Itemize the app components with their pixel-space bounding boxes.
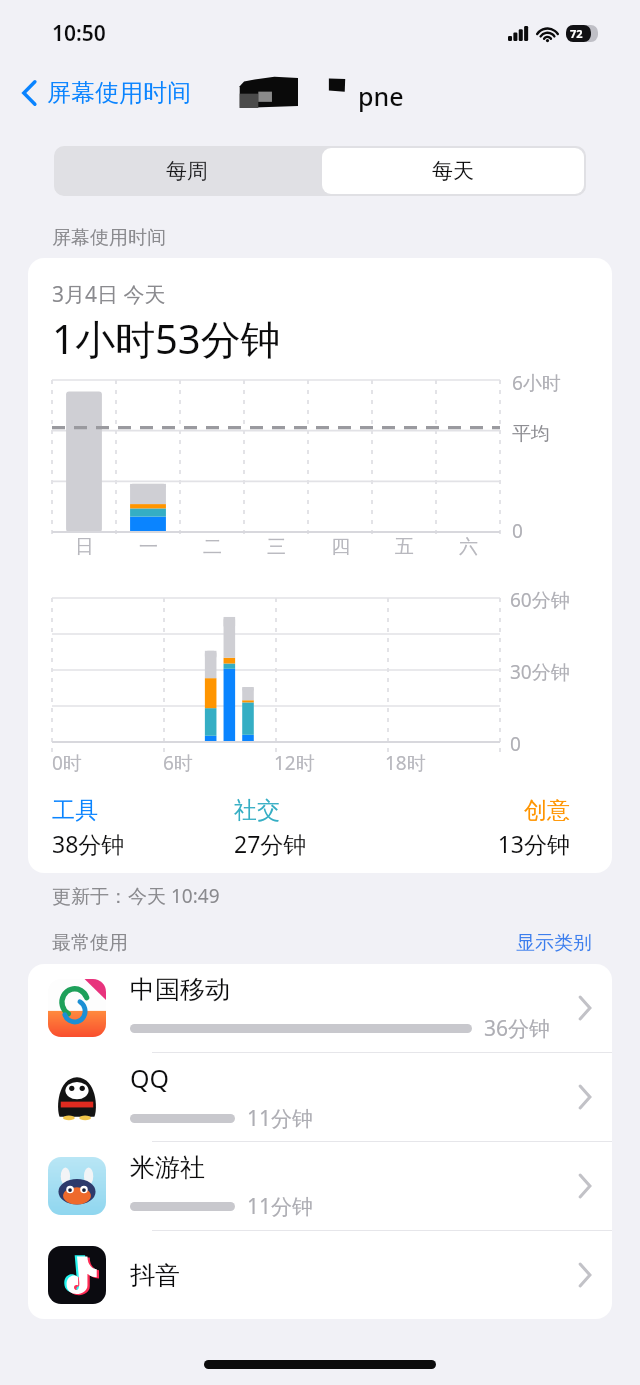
staticText: pne [358, 79, 404, 113]
staticText: 屏幕使用时间 [52, 226, 166, 250]
button[interactable]: 中国移动 [28, 964, 612, 1052]
staticText: 三 [267, 535, 286, 559]
staticText: 创意 [416, 796, 570, 825]
button[interactable]: QQ [28, 1053, 612, 1141]
staticText: 一 [139, 535, 158, 559]
staticText: 显示类别 [516, 931, 592, 955]
button[interactable]: 每周 [54, 146, 320, 196]
button[interactable]: 返回 屏幕使用时间 [16, 72, 197, 114]
staticText: 36分钟 [484, 1014, 551, 1043]
staticText: 18时 [385, 750, 426, 776]
button[interactable]: 显示类别 [516, 931, 592, 955]
staticText: 二 [203, 535, 222, 559]
staticText: 四 [331, 535, 350, 559]
staticText: 最常使用 [52, 931, 128, 955]
staticText: 27分钟 [234, 828, 416, 859]
staticText: 米游社 [130, 1152, 205, 1183]
button[interactable]: 每天 [322, 148, 584, 194]
staticText: 0 [510, 731, 521, 757]
other: 查看 抖音 详情 [578, 1262, 592, 1288]
staticText: 11分钟 [247, 1104, 314, 1133]
staticText: 10:50 [52, 19, 106, 48]
staticText: 日 [75, 535, 94, 559]
other: 查看 中国移动 详情 [578, 995, 592, 1021]
staticText: 平均 [512, 422, 550, 446]
staticText: 13分钟 [416, 828, 570, 859]
staticText: 每天 [432, 158, 474, 184]
staticText: 抖音 [130, 1260, 180, 1291]
other: 查看 米游社 详情 [578, 1173, 592, 1199]
staticText: 五 [395, 535, 414, 559]
staticText: 中国移动 [130, 974, 230, 1005]
staticText: 3月4日 今天 [52, 280, 166, 309]
staticText: 11分钟 [247, 1192, 314, 1221]
staticText: 更新于：今天 10:49 [52, 883, 220, 909]
staticText: 0 [512, 518, 523, 544]
staticText: 每周 [166, 158, 208, 184]
staticText: 0时 [52, 750, 82, 776]
staticText: 六 [459, 535, 478, 559]
button[interactable]: 抖音 [28, 1231, 612, 1319]
button[interactable]: 米游社 [28, 1142, 612, 1230]
staticText: QQ [130, 1061, 170, 1095]
staticText: 屏幕使用时间 [47, 78, 191, 108]
staticText: 社交 [234, 796, 416, 825]
staticText: 38分钟 [52, 828, 234, 859]
staticText: 72 [570, 26, 583, 41]
other: 查看 QQ 详情 [578, 1084, 592, 1110]
staticText: 6小时 [512, 370, 561, 396]
staticText: 60分钟 [510, 587, 570, 613]
staticText: 12时 [274, 750, 315, 776]
staticText: 6时 [163, 750, 193, 776]
staticText: 1小时53分钟 [52, 311, 281, 366]
staticText: 30分钟 [510, 659, 570, 685]
staticText: 工具 [52, 796, 234, 825]
